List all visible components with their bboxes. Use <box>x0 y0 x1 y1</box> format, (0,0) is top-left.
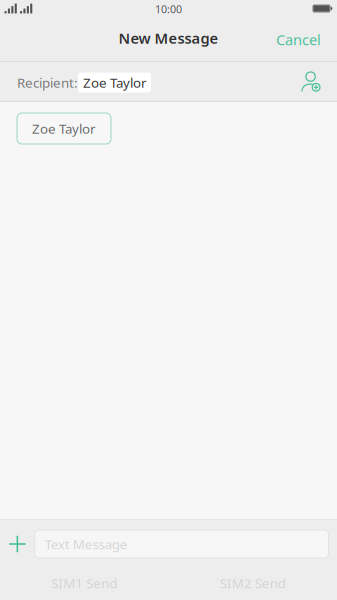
staticText: 10:00 <box>155 2 182 16</box>
staticText: SIM1 Send <box>51 574 117 592</box>
staticText: Cancel <box>276 30 321 49</box>
staticText: New Message <box>118 28 218 48</box>
button[interactable]: SIM2 Send <box>168 558 337 600</box>
button[interactable]: Cancel <box>258 24 337 61</box>
button[interactable]: Add contact <box>301 70 321 94</box>
staticText: Zoe Taylor <box>83 74 147 91</box>
button[interactable]: SIM1 Send <box>0 558 168 600</box>
staticText: SIM2 Send <box>220 574 286 592</box>
button[interactable]: Zoe Taylor <box>17 113 111 144</box>
staticText: Zoe Taylor <box>32 120 96 137</box>
staticText: Recipient: <box>17 74 78 91</box>
staticText: Text Message <box>45 535 128 553</box>
button[interactable]: Add attachment <box>0 530 35 558</box>
